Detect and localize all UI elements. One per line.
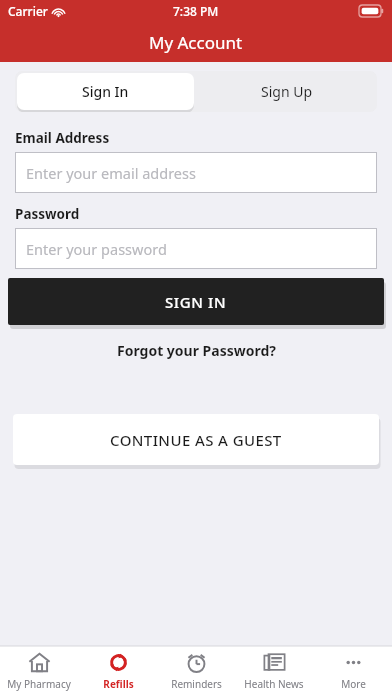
staticText: CONTINUE AS A GUEST <box>110 430 282 450</box>
staticText: My Pharmacy <box>7 677 71 691</box>
staticText: Enter your password <box>26 239 167 259</box>
button[interactable]: Forgot your Password? <box>0 341 392 360</box>
button[interactable]: Enter your email address <box>15 152 377 193</box>
button[interactable]: Sign Up <box>196 71 377 112</box>
button[interactable]: Refills <box>79 646 157 696</box>
staticText: More <box>341 677 366 691</box>
button[interactable]: Health News <box>235 646 313 696</box>
button[interactable]: Sign In <box>17 73 194 110</box>
staticText: Password <box>15 205 80 223</box>
button[interactable]: Reminders <box>157 646 235 696</box>
staticText: Sign Up <box>261 82 313 101</box>
staticText: Refills <box>103 677 134 691</box>
button[interactable]: More <box>314 646 392 696</box>
button[interactable]: CONTINUE AS A GUEST <box>13 414 379 465</box>
staticText: Forgot your Password? <box>117 341 276 360</box>
staticText: My Account <box>149 31 243 54</box>
button[interactable]: SIGN IN <box>8 278 384 325</box>
staticText: Email Address <box>15 129 110 147</box>
staticText: Reminders <box>171 677 222 691</box>
staticText: Enter your email address <box>26 163 196 183</box>
button[interactable]: My Pharmacy <box>0 646 78 696</box>
staticText: Sign In <box>82 82 129 101</box>
staticText: 7:38 PM <box>173 3 219 19</box>
staticText: Carrier <box>8 3 48 19</box>
staticText: SIGN IN <box>165 292 227 312</box>
staticText: Health News <box>244 677 304 691</box>
button[interactable]: Enter your password <box>15 228 377 269</box>
